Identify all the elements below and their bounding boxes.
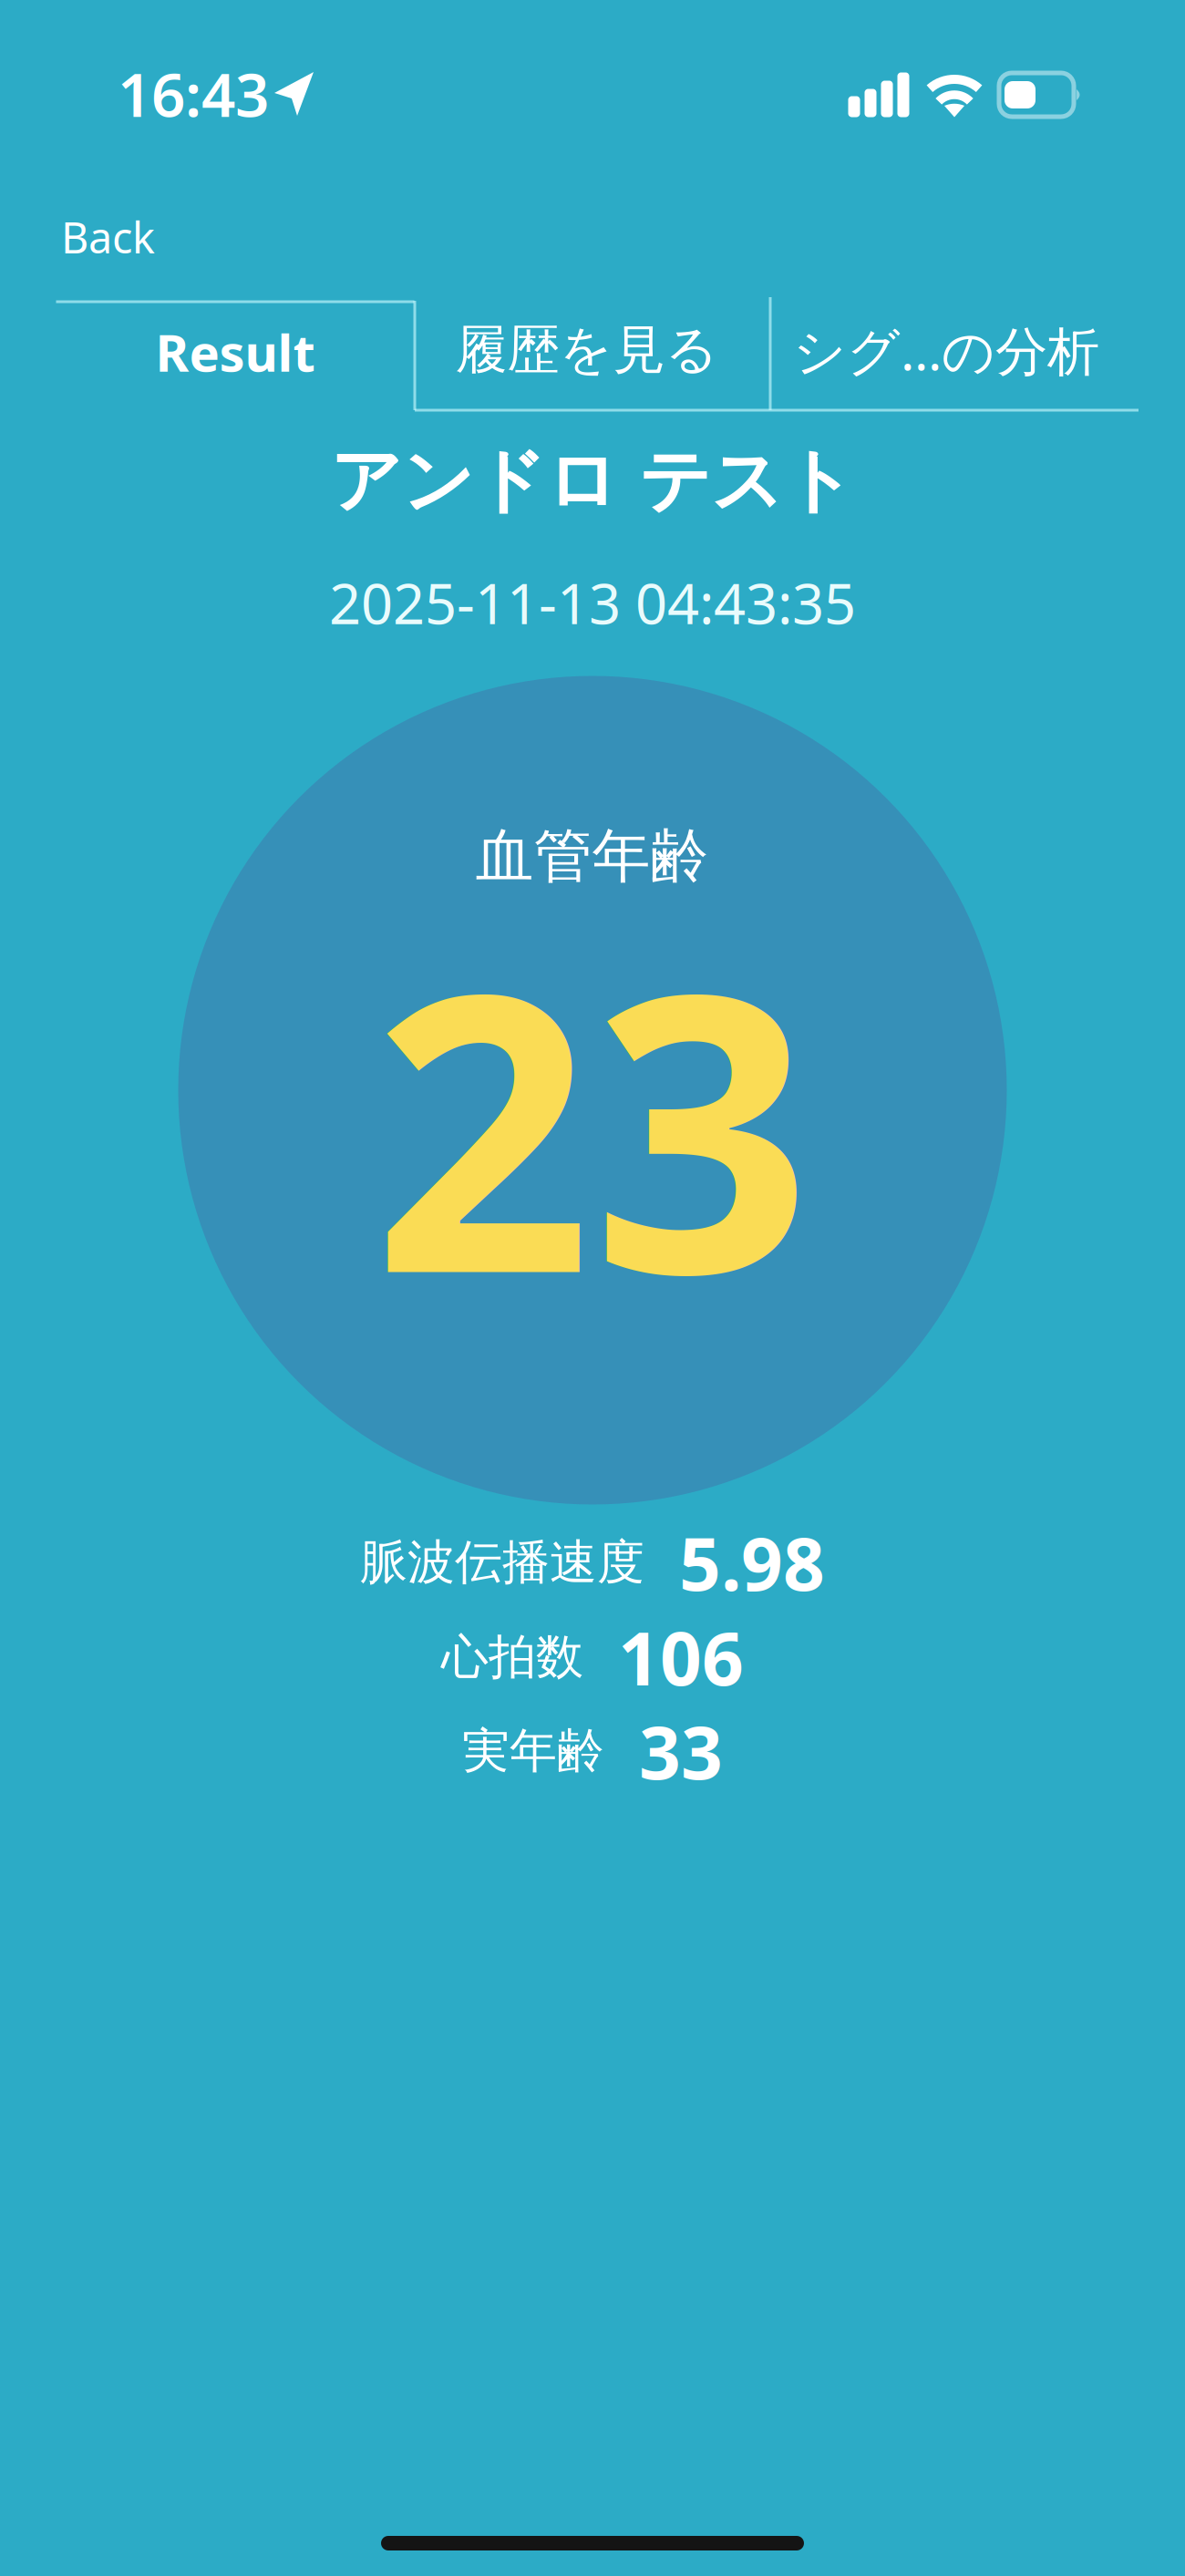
button[interactable]: Result xyxy=(56,298,414,406)
staticText: 2025-11-13 04:43:35 xyxy=(329,565,856,640)
staticText: 5.98 xyxy=(679,1514,825,1611)
button[interactable]: Back xyxy=(61,196,234,278)
staticText: 23 xyxy=(372,868,812,1378)
staticText: 16:43 xyxy=(118,54,269,133)
button[interactable]: 履歴を見る xyxy=(410,296,764,404)
staticText: Back xyxy=(61,209,155,265)
staticText: アンドロ テスト xyxy=(330,438,855,525)
staticText: 心拍数 xyxy=(441,1628,583,1686)
staticText: Result xyxy=(155,318,315,386)
staticText: 脈波伝播速度 xyxy=(360,1533,644,1592)
staticText: 106 xyxy=(618,1609,744,1706)
button[interactable]: シグ…の分析 xyxy=(764,296,1128,404)
staticText: 血管年齢 xyxy=(475,821,709,892)
staticText: シグ…の分析 xyxy=(793,315,1099,385)
staticText: 33 xyxy=(639,1703,723,1799)
staticText: 実年齢 xyxy=(462,1722,604,1780)
staticText: 履歴を見る xyxy=(455,318,719,382)
